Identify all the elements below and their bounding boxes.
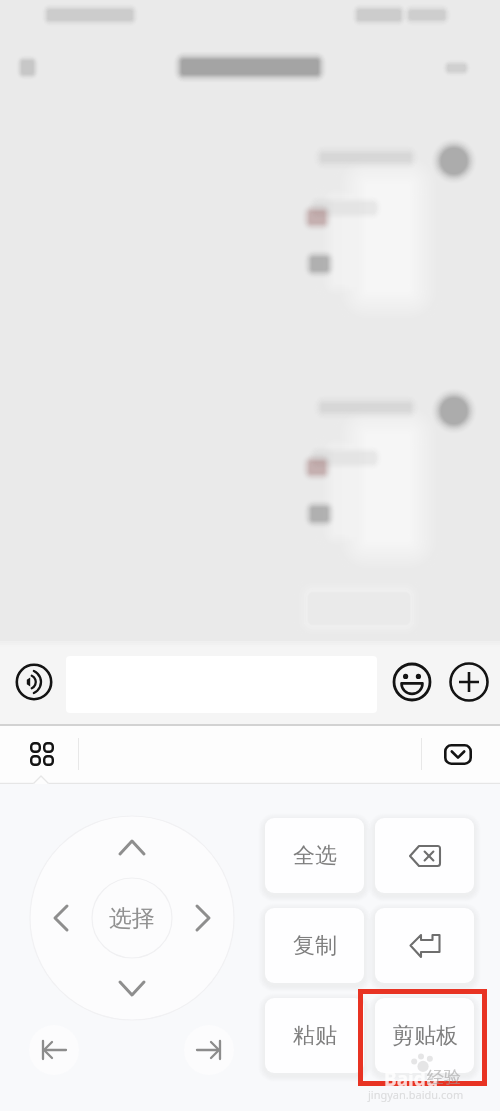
staticText: 粘贴	[293, 1022, 337, 1050]
button[interactable]: Move right	[176, 892, 228, 944]
button[interactable]: 选择	[92, 878, 172, 958]
button[interactable]: 剪贴板	[375, 998, 474, 1073]
button[interactable]: Move left	[36, 892, 88, 944]
button[interactable]: 复制	[265, 908, 364, 983]
staticText: 选择	[109, 904, 155, 933]
button[interactable]: More functions	[445, 658, 493, 706]
staticText: 经验	[427, 1067, 461, 1088]
button[interactable]: Move to end	[184, 1025, 234, 1075]
button[interactable]: Emoji	[388, 658, 436, 706]
button[interactable]: Enter	[375, 908, 474, 983]
button[interactable]: 全选	[265, 818, 364, 893]
staticText: Baidu	[384, 1066, 439, 1092]
button[interactable]: Keyboard tools	[6, 724, 78, 784]
button[interactable]: Move to start	[29, 1025, 79, 1075]
button[interactable]: 粘贴	[265, 998, 364, 1073]
button[interactable]: Hide keyboard	[428, 724, 488, 784]
staticText: jingyan.baidu.com	[368, 1087, 464, 1102]
button[interactable]: Backspace	[375, 818, 474, 893]
staticText: 复制	[293, 932, 337, 960]
staticText: 全选	[293, 842, 337, 870]
button[interactable]: Move up	[106, 822, 158, 874]
staticText: 剪贴板	[392, 1022, 458, 1050]
button[interactable]: Move down	[106, 962, 158, 1014]
button[interactable]: Voice input	[10, 658, 58, 706]
